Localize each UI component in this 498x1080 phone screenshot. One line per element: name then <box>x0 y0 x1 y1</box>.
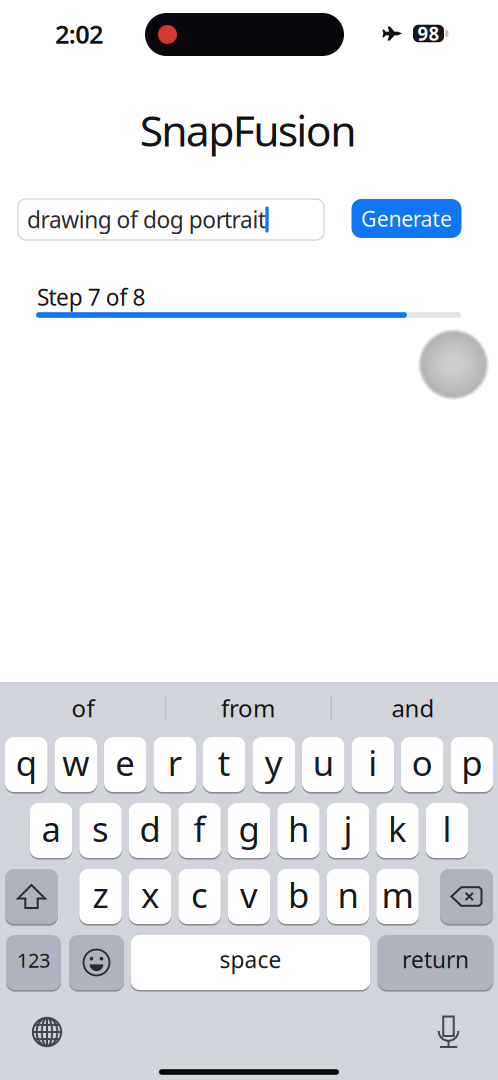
staticText: x <box>141 871 159 917</box>
staticText: c <box>191 871 208 917</box>
staticText: k <box>388 805 407 851</box>
staticText: 123 <box>17 947 50 973</box>
button[interactable]: Emoji <box>69 934 124 991</box>
staticText: g <box>238 805 259 851</box>
button[interactable]: x <box>129 868 171 925</box>
button[interactable]: space <box>131 934 370 991</box>
staticText: 2:02 <box>55 17 103 51</box>
button[interactable]: e <box>104 736 146 793</box>
button[interactable]: Shift <box>5 868 58 925</box>
button[interactable]: s <box>79 802 122 859</box>
staticText: t <box>218 739 231 785</box>
button[interactable]: h <box>277 802 320 859</box>
button[interactable]: Delete <box>440 868 493 925</box>
staticText: f <box>193 805 205 851</box>
button[interactable]: i <box>351 736 394 793</box>
staticText: SnapFusion <box>140 102 356 158</box>
button[interactable]: from <box>173 686 323 730</box>
staticText: d <box>139 805 160 851</box>
staticText: j <box>343 805 352 851</box>
button[interactable]: j <box>327 802 369 859</box>
button[interactable]: n <box>327 868 369 925</box>
button[interactable]: t <box>203 736 245 793</box>
staticText: w <box>62 739 89 785</box>
staticText: p <box>461 739 482 785</box>
staticText: from <box>221 692 275 724</box>
staticText: l <box>442 805 451 851</box>
button[interactable]: c <box>178 868 221 925</box>
staticText: u <box>313 739 334 785</box>
button[interactable]: a <box>30 802 72 859</box>
staticText: v <box>240 871 258 917</box>
button[interactable]: w <box>54 736 97 793</box>
staticText: e <box>115 739 135 785</box>
staticText: of <box>71 692 94 724</box>
staticText: Step 7 of 8 <box>37 282 145 312</box>
button[interactable]: m <box>376 868 419 925</box>
button[interactable]: o <box>401 736 443 793</box>
button[interactable]: g <box>228 802 270 859</box>
button[interactable]: l <box>426 802 468 859</box>
button[interactable]: z <box>79 868 122 925</box>
staticText: b <box>288 871 309 917</box>
staticText: i <box>368 739 377 785</box>
staticText: n <box>337 871 358 917</box>
staticText: z <box>92 871 108 917</box>
staticText: a <box>41 805 60 851</box>
button[interactable]: q <box>5 736 47 793</box>
button[interactable]: d <box>129 802 171 859</box>
staticText: drawing of dog portrait <box>27 204 266 234</box>
button[interactable]: return <box>378 934 493 991</box>
button[interactable]: p <box>450 736 493 793</box>
button[interactable]: v <box>228 868 270 925</box>
staticText: r <box>168 739 182 785</box>
staticText: q <box>16 739 37 785</box>
staticText: m <box>381 871 413 917</box>
button[interactable]: Next keyboard <box>29 1014 65 1050</box>
staticText: 98 <box>417 21 439 46</box>
staticText: and <box>391 692 434 724</box>
button[interactable]: r <box>153 736 196 793</box>
button[interactable]: and <box>338 686 488 730</box>
staticText: o <box>412 739 433 785</box>
button[interactable]: Generate <box>351 199 461 238</box>
button[interactable]: of <box>8 686 158 730</box>
button[interactable]: Dictation <box>430 1014 466 1050</box>
button[interactable]: Prompt text field <box>18 199 324 240</box>
staticText: Generate <box>361 204 452 233</box>
button[interactable]: y <box>252 736 295 793</box>
staticText: s <box>92 805 109 851</box>
button[interactable]: f <box>178 802 221 859</box>
button[interactable]: u <box>302 736 344 793</box>
staticText: space <box>219 944 281 974</box>
button[interactable]: 123 <box>6 934 61 991</box>
staticText: return <box>402 944 469 974</box>
staticText: y <box>265 739 283 785</box>
button[interactable]: b <box>277 868 320 925</box>
staticText: h <box>288 805 309 851</box>
button[interactable]: k <box>376 802 419 859</box>
